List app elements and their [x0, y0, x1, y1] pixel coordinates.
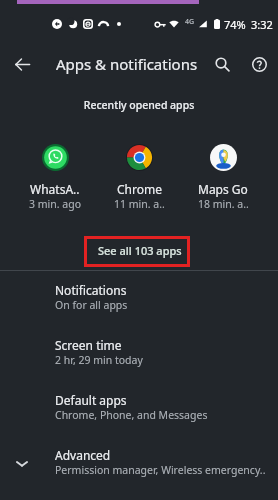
button[interactable]: Chrome	[97, 144, 181, 211]
button[interactable]: Default apps	[0, 381, 278, 436]
staticText: On for all apps	[55, 298, 128, 312]
staticText: Apps & notifications	[56, 54, 198, 74]
staticText: See all 103 apps	[98, 243, 182, 258]
staticText: 3:32	[251, 17, 273, 32]
button[interactable]: Search	[206, 48, 238, 80]
staticText: 4G	[185, 17, 195, 27]
button[interactable]: Notifications	[0, 271, 278, 326]
button[interactable]: Maps Go	[181, 144, 265, 211]
staticText: Maps Go	[198, 181, 248, 197]
staticText: Notifications	[55, 282, 127, 298]
button[interactable]: Advanced	[0, 436, 278, 491]
button[interactable]: Back	[6, 48, 38, 80]
staticText: Chrome	[117, 181, 162, 197]
staticText: Default apps	[55, 392, 127, 408]
staticText: Permission manager, Wireless emergency..	[55, 463, 266, 477]
staticText: 11 min. a..	[114, 197, 165, 211]
button[interactable]: WhatsA..	[13, 144, 97, 211]
button[interactable]: Help	[243, 48, 275, 80]
staticText: 3 min. ago	[29, 197, 81, 211]
staticText: 18 min. a..	[198, 197, 249, 211]
button[interactable]: Screen time	[0, 326, 278, 381]
staticText: 2 hr, 29 min today	[55, 353, 143, 367]
staticText: Screen time	[55, 337, 122, 353]
staticText: 74%	[224, 17, 246, 32]
staticText: Recently opened apps	[0, 98, 278, 112]
staticText: WhatsA..	[30, 181, 80, 197]
button[interactable]: See all 103 apps	[84, 236, 190, 267]
staticText: Advanced	[55, 447, 111, 463]
staticText: Chrome, Phone, and Messages	[55, 408, 208, 422]
